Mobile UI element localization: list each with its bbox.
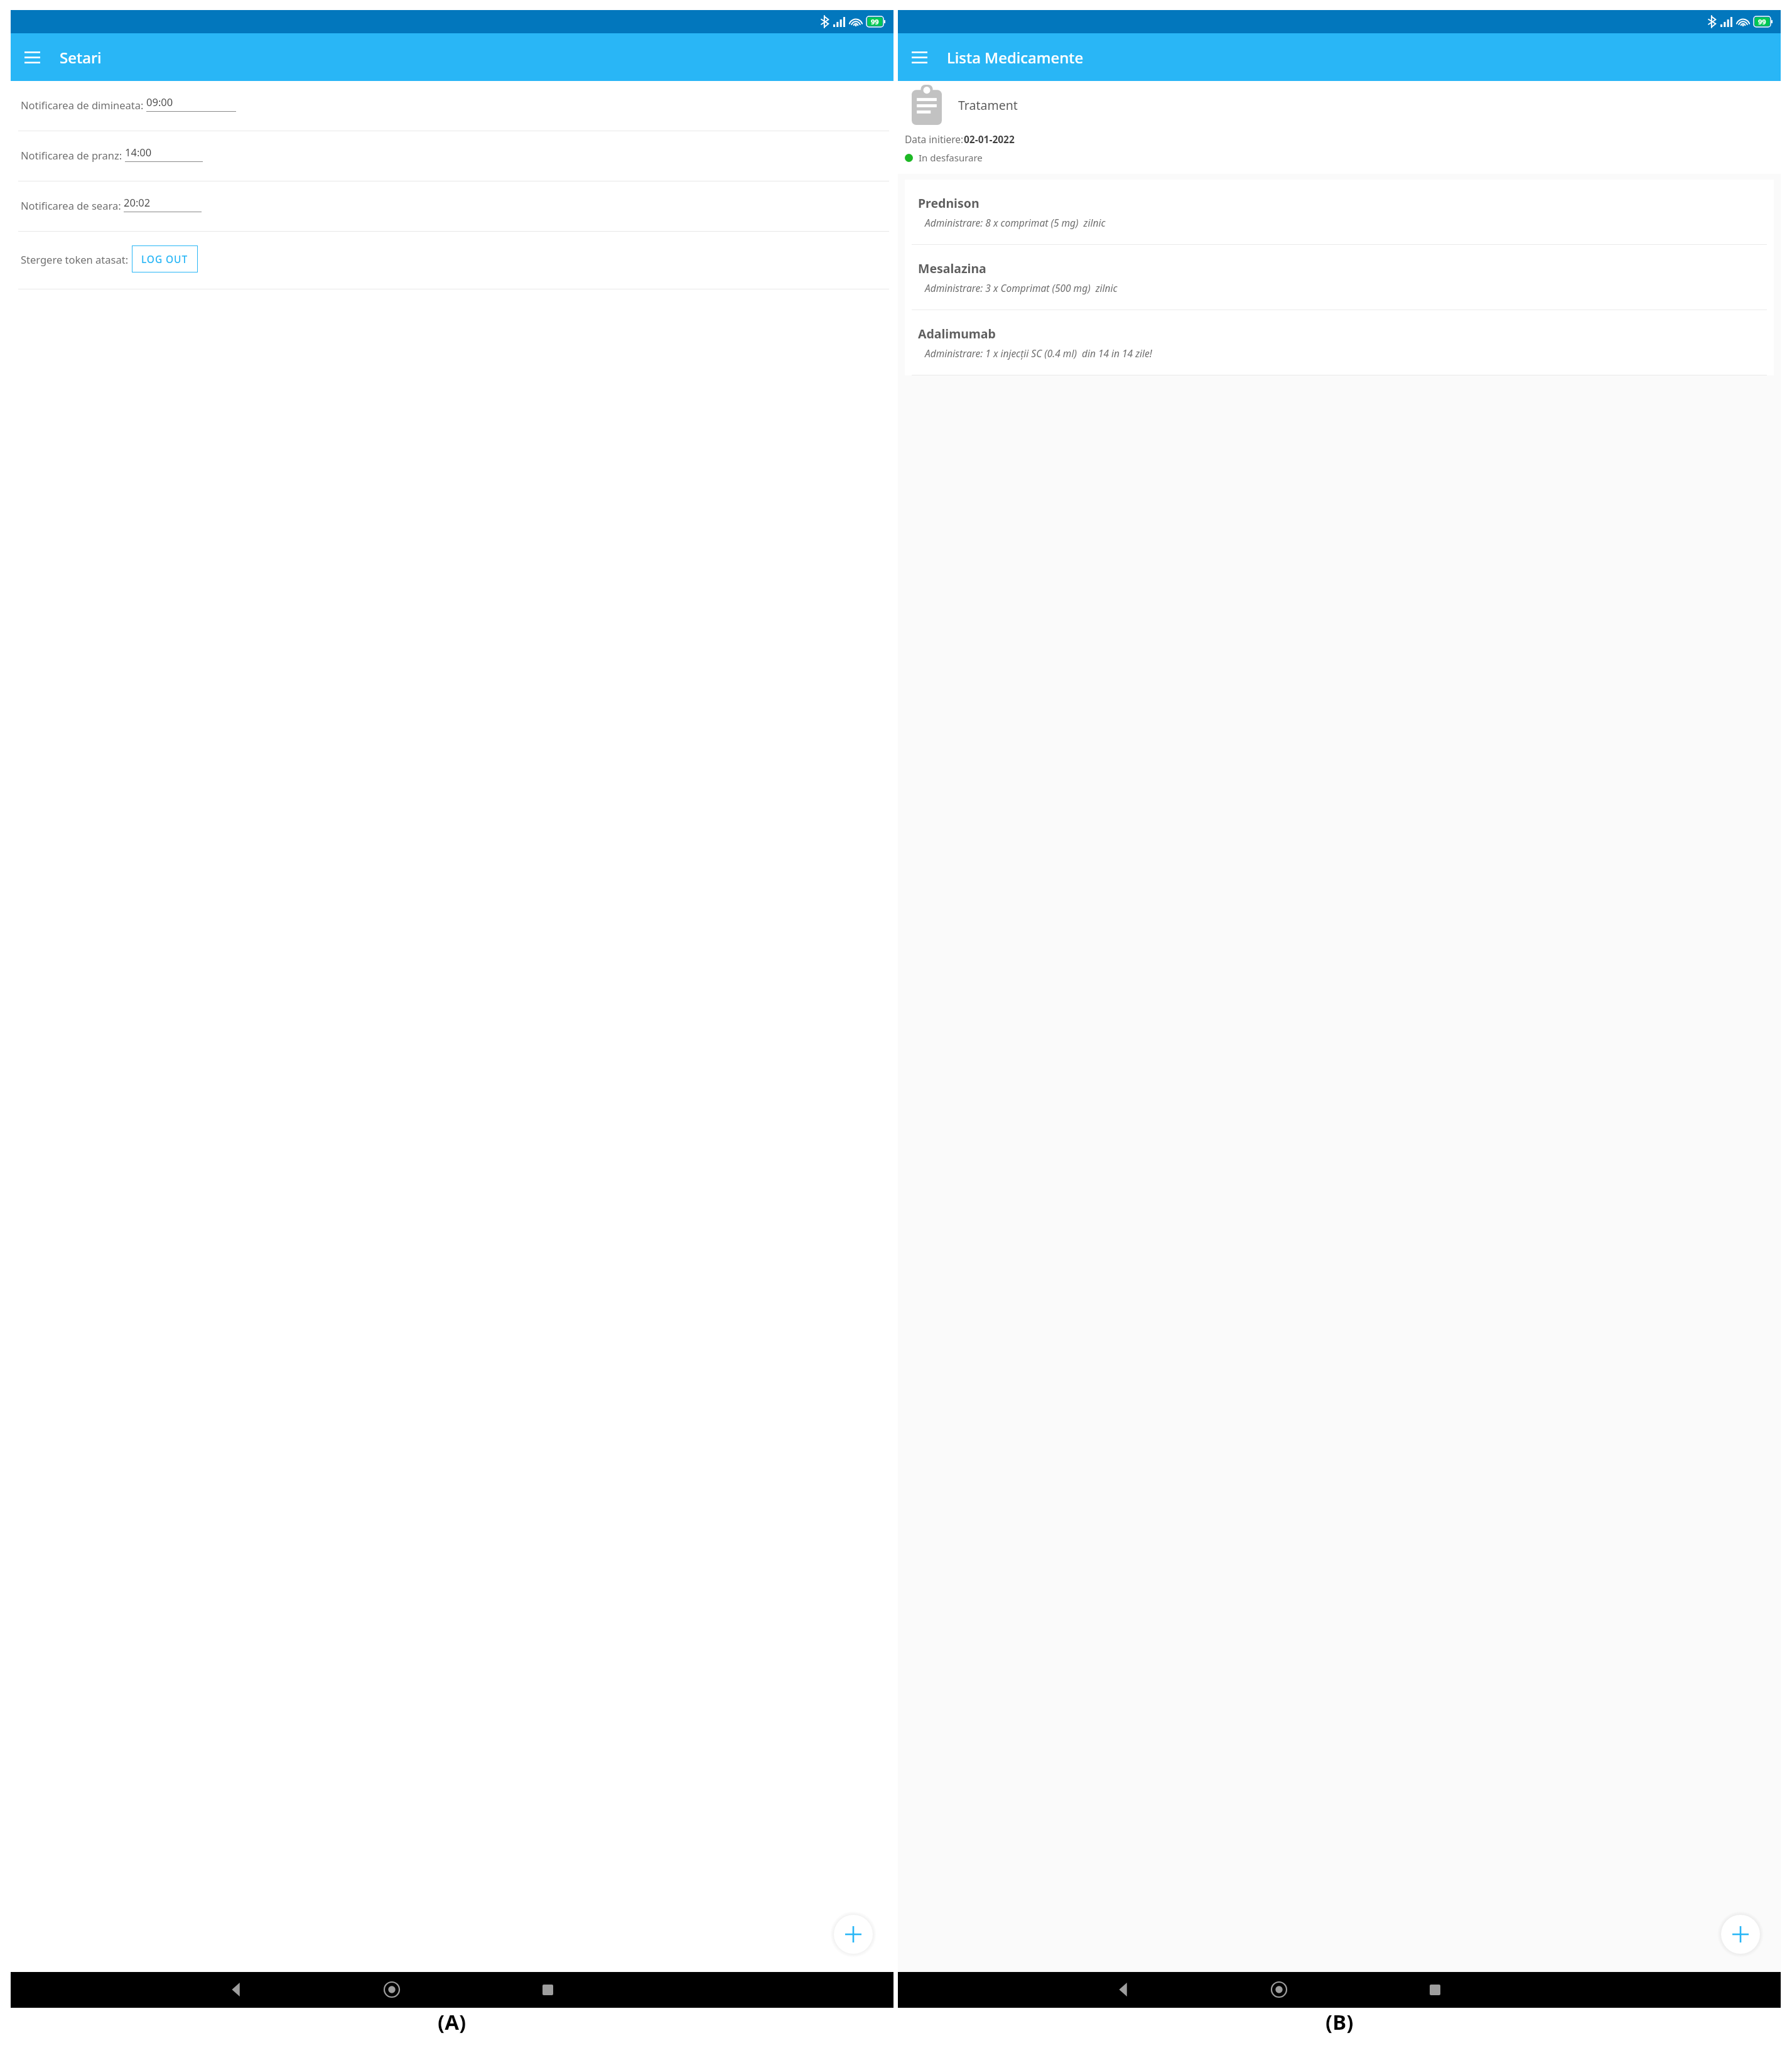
button[interactable]: Notificarea de seara:: [11, 181, 893, 232]
button[interactable]: Add: [1721, 1915, 1760, 1954]
staticText: Stergere token atasat:: [21, 252, 129, 266]
staticText: Lista Medicamente: [947, 47, 1084, 68]
button[interactable]: Mesalazina: [905, 245, 1774, 310]
staticText: Data initiere:: [905, 132, 964, 146]
staticText: Administrare: 1 x injecții SC (0.4 ml) d…: [925, 347, 1152, 360]
staticText: 20:02: [124, 195, 151, 209]
staticText: Administrare: 3 x Comprimat (500 mg) zil…: [925, 281, 1118, 294]
staticText: (B): [1325, 2008, 1354, 2036]
staticText: Adalimumab: [918, 325, 996, 342]
staticText: Notificarea de dimineata:: [21, 98, 144, 112]
staticText: (A): [438, 2008, 467, 2036]
staticText: In desfasurare: [919, 151, 983, 164]
staticText: 09:00: [146, 95, 173, 109]
staticText: Notificarea de pranz:: [21, 148, 122, 162]
button[interactable]: Home: [1261, 1972, 1297, 2007]
button[interactable]: Back: [1106, 1972, 1141, 2007]
staticText: 14:00: [125, 145, 152, 159]
button[interactable]: Prednison: [905, 180, 1774, 244]
button[interactable]: Open navigation menu: [19, 46, 45, 68]
button[interactable]: Recent apps: [530, 1972, 565, 2007]
staticText: Prednison: [918, 195, 980, 212]
button[interactable]: Back: [219, 1972, 254, 2007]
staticText: Mesalazina: [918, 260, 986, 277]
button[interactable]: Adalimumab: [905, 310, 1774, 375]
button[interactable]: Open navigation menu: [907, 46, 932, 68]
staticText: Notificarea de seara:: [21, 198, 121, 212]
staticText: 02-01-2022: [964, 132, 1015, 146]
staticText: Tratament: [958, 97, 1018, 114]
staticText: 99: [1758, 17, 1766, 26]
button[interactable]: Notificarea de dimineata:: [11, 81, 893, 131]
staticText: Administrare: 8 x comprimat (5 mg) zilni…: [925, 216, 1106, 229]
button[interactable]: Notificarea de pranz:: [11, 131, 893, 181]
button[interactable]: LOG OUT: [132, 245, 198, 272]
staticText: 99: [871, 17, 879, 26]
button[interactable]: Home: [374, 1972, 409, 2007]
button[interactable]: Recent apps: [1417, 1972, 1452, 2007]
button[interactable]: Add: [834, 1915, 873, 1954]
staticText: LOG OUT: [141, 252, 188, 266]
staticText: Setari: [60, 47, 102, 68]
button[interactable]: Tratament: [898, 81, 1781, 174]
